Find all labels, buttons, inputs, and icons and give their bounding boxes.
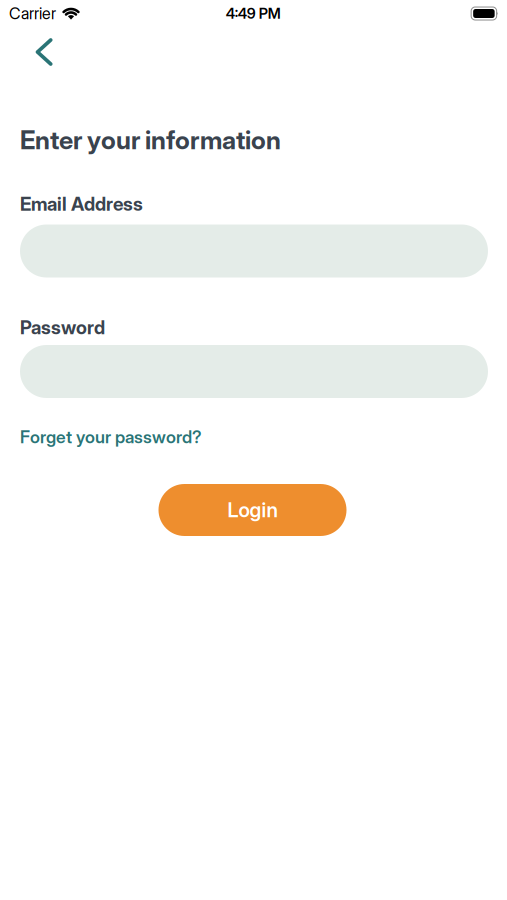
staticText: Enter your information [20, 125, 281, 155]
staticText: Login [227, 498, 277, 522]
staticText: Carrier [9, 4, 56, 23]
staticText: Forget your password? [20, 427, 202, 447]
button[interactable]: Back [21, 30, 65, 74]
staticText: Email Address [20, 193, 143, 215]
staticText: 4:49 PM [226, 5, 281, 22]
staticText: Password [20, 316, 105, 338]
button[interactable]: Login [158, 484, 346, 536]
button[interactable]: Forget your password? [20, 427, 487, 447]
